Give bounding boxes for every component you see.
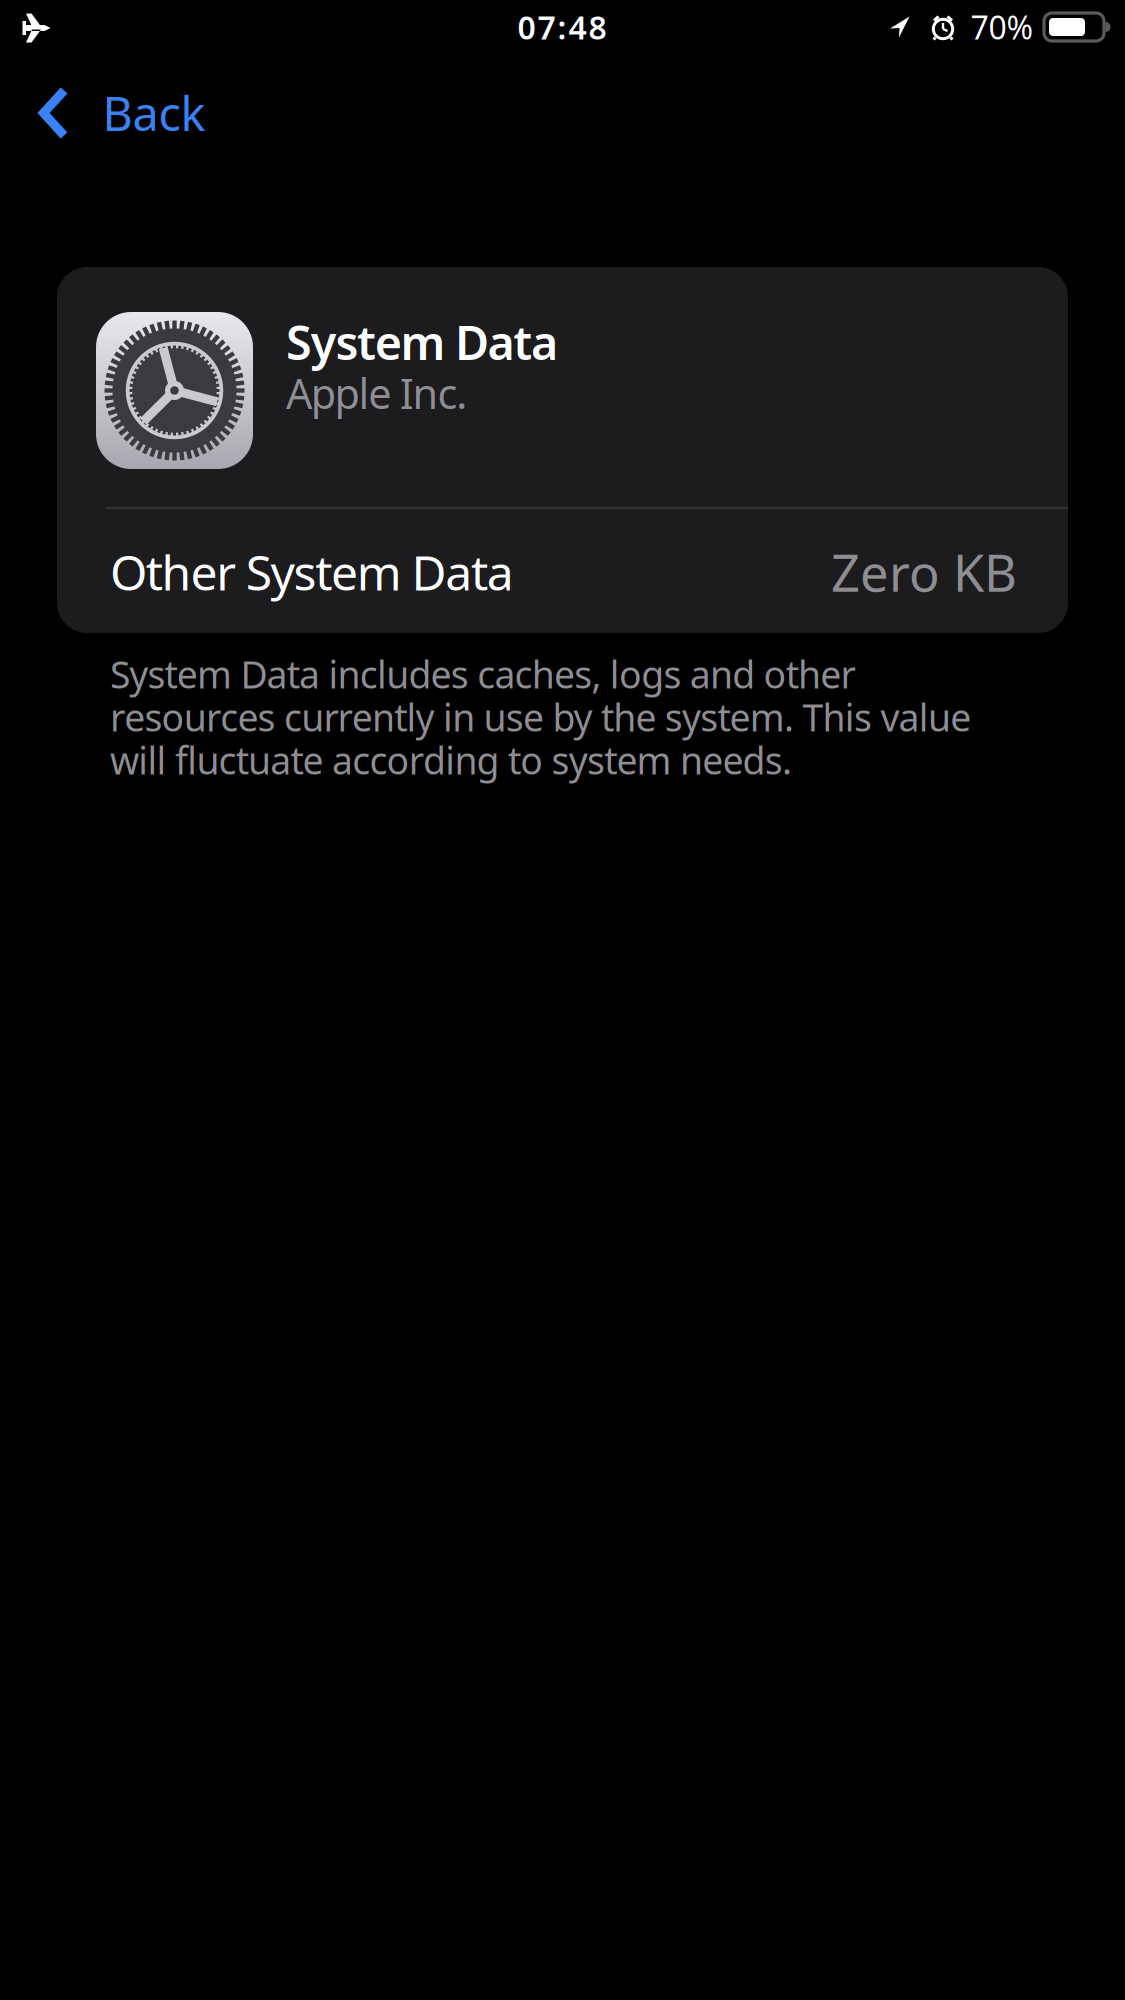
staticText: 07:48: [517, 6, 606, 48]
staticText: Apple Inc.: [286, 366, 467, 420]
staticText: Zero KB: [831, 538, 1017, 606]
button[interactable]: Back: [28, 74, 215, 152]
staticText: System Data includes caches, logs and ot…: [110, 649, 855, 699]
staticText: 70%: [970, 6, 1033, 48]
staticText: Other System Data: [110, 540, 514, 604]
staticText: System Data: [286, 311, 558, 373]
staticText: resources currently in use by the system…: [110, 692, 971, 742]
staticText: Back: [102, 82, 205, 144]
staticText: will fluctuate according to system needs…: [110, 735, 792, 785]
